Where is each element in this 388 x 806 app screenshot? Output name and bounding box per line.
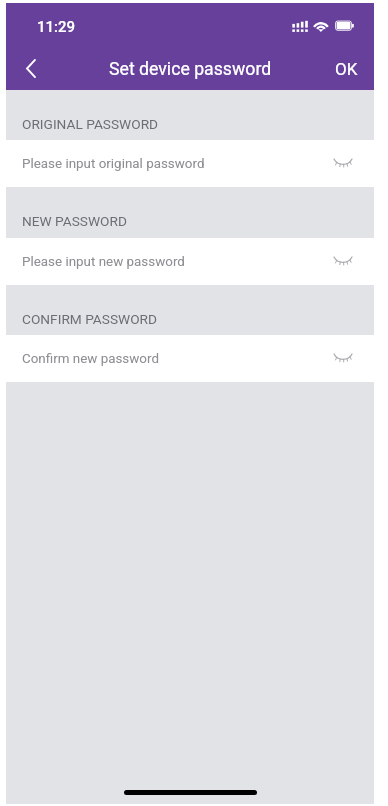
staticText: Confirm new password [22,351,327,367]
staticText: CONFIRM PASSWORD [22,311,158,327]
button[interactable]: Show password [327,246,359,278]
staticText: ORIGINAL PASSWORD [22,116,159,132]
staticText: Please input new password [22,254,327,270]
button[interactable]: Please input new password [6,238,374,285]
button[interactable]: OK [317,47,374,90]
staticText: Set device password [109,59,272,80]
button[interactable]: Confirm new password [6,335,374,382]
staticText: NEW PASSWORD [22,213,127,229]
button[interactable]: Please input original password [6,140,374,187]
staticText: Please input original password [22,156,327,172]
staticText: 11:29 [37,18,76,36]
button[interactable]: Show password [327,343,359,375]
button[interactable]: Back [6,47,56,90]
button[interactable]: Show password [327,148,359,180]
staticText: OK [335,59,358,79]
